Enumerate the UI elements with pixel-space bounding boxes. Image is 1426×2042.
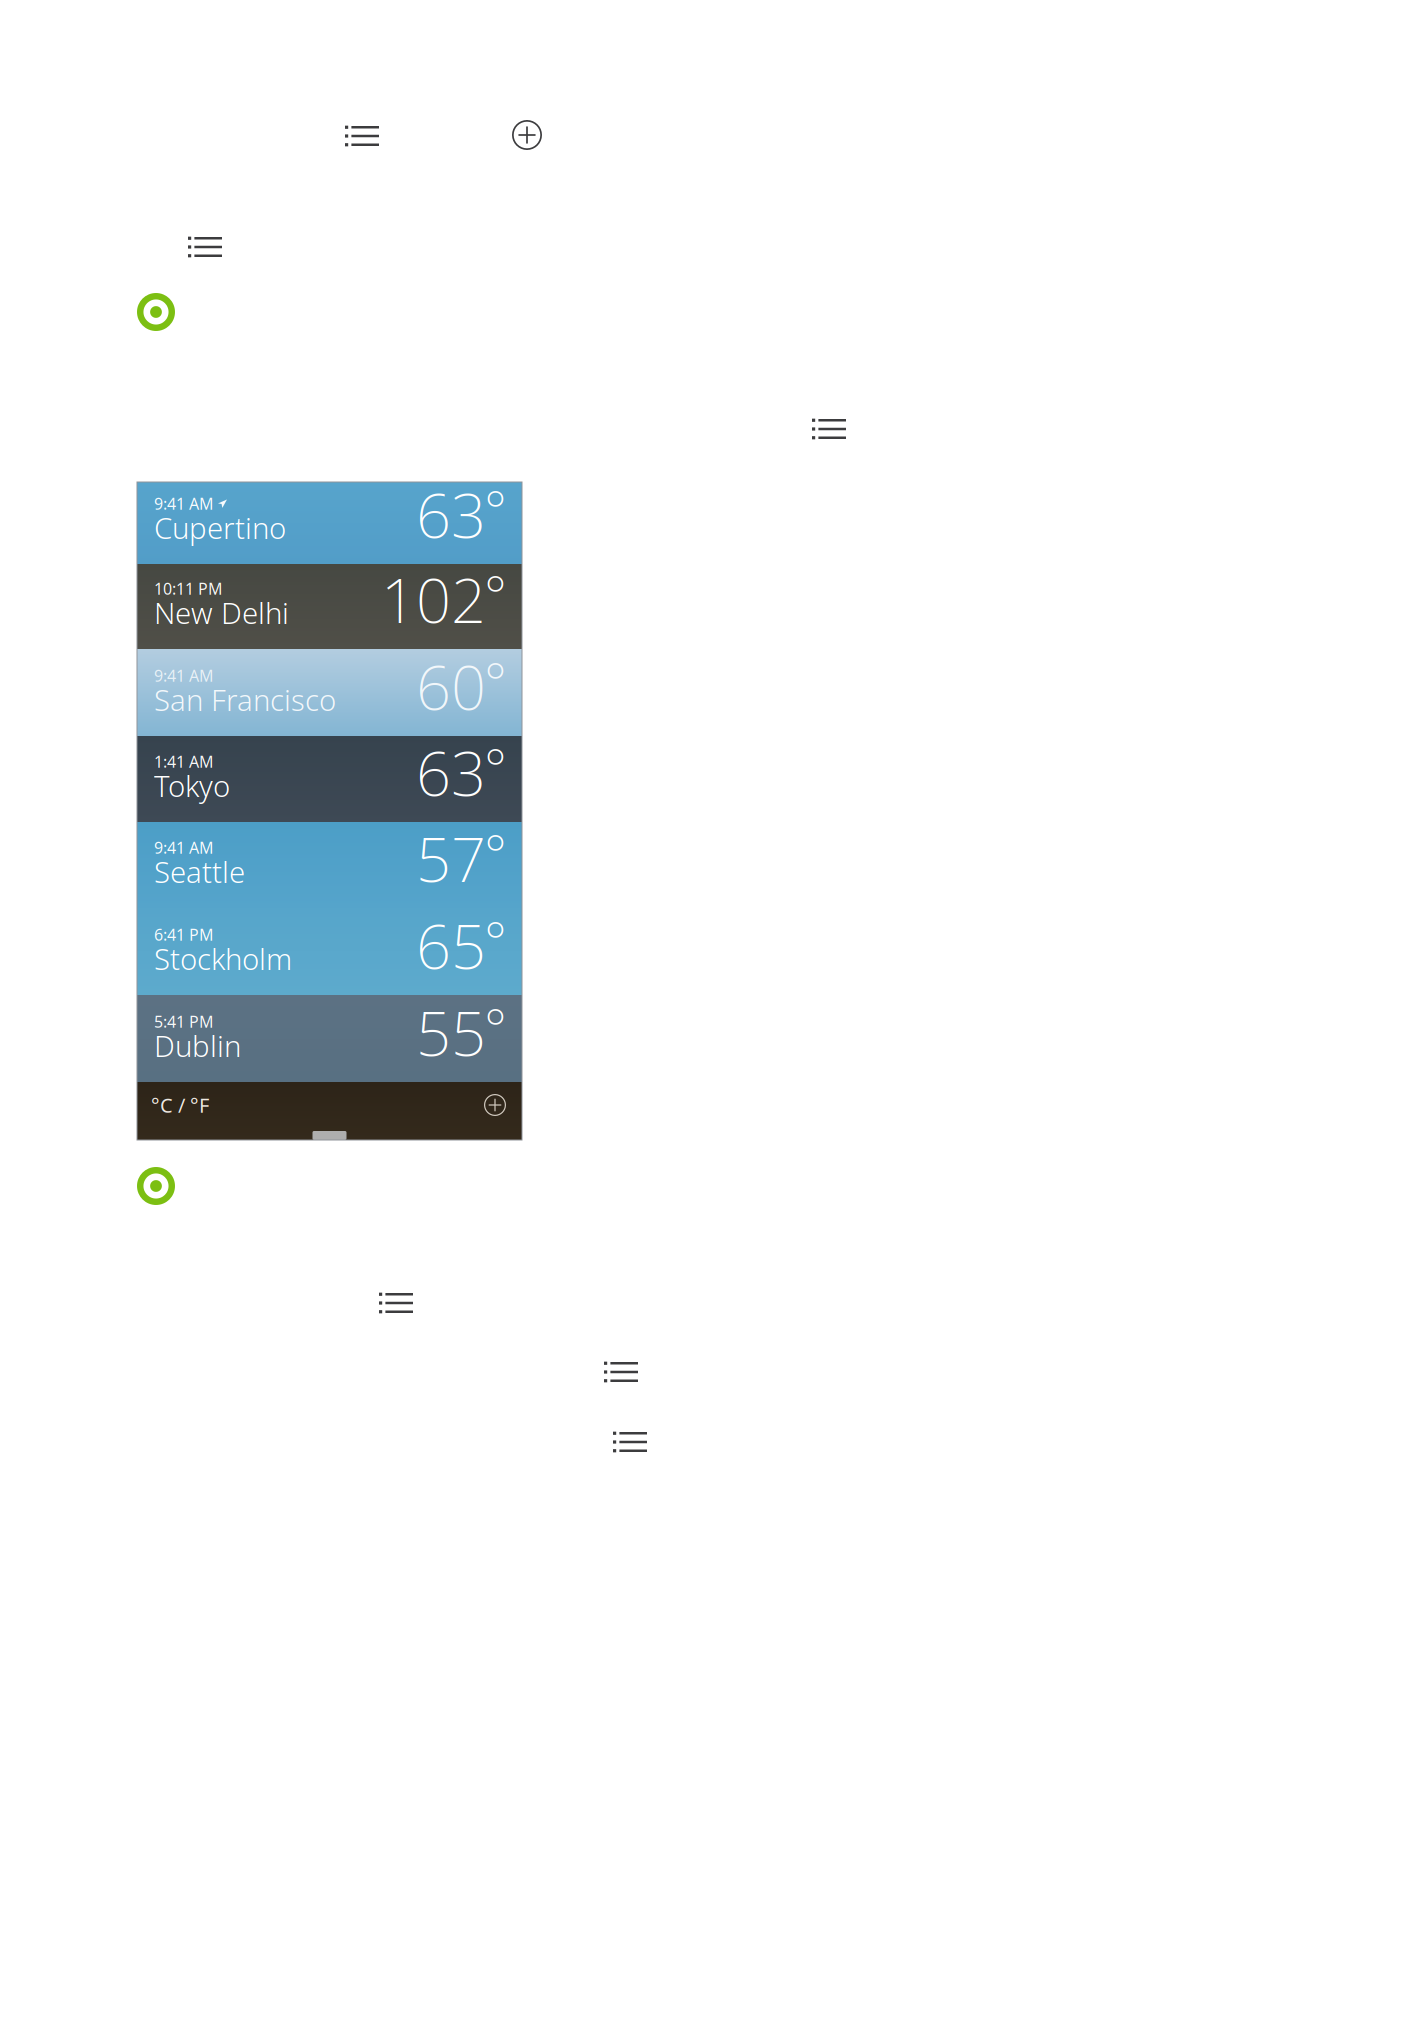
staticText: °C / °F (151, 1092, 209, 1118)
staticText: San Francisco (154, 680, 336, 719)
staticText: 55 (416, 992, 486, 1073)
button[interactable]: 1:41 AM (137, 736, 522, 822)
staticText: ° (484, 905, 507, 975)
button[interactable]: List (812, 419, 846, 439)
button[interactable]: 9:41 AM (137, 822, 522, 908)
staticText: 10:11 PM (154, 578, 223, 599)
button[interactable]: Add (512, 120, 542, 150)
button[interactable]: °C / °F (137, 1087, 209, 1123)
staticText: Seattle (154, 852, 245, 891)
button[interactable]: 6:41 PM (137, 908, 522, 995)
button[interactable]: 10:11 PM (137, 564, 522, 649)
staticText: New Delhi (154, 593, 289, 632)
staticText: 60 (416, 646, 486, 727)
button[interactable]: List (613, 1432, 647, 1452)
staticText: ° (484, 992, 507, 1062)
button[interactable]: 9:41 AM (137, 649, 522, 736)
staticText: 9:41 AM (154, 837, 214, 858)
staticText: 5:41 PM (154, 1011, 214, 1032)
staticText: 6:41 PM (154, 924, 214, 945)
staticText: Tokyo (154, 766, 230, 805)
staticText: ° (484, 559, 507, 629)
staticText: 9:41 AM (154, 665, 214, 686)
staticText: 63 (416, 474, 486, 555)
staticText: Cupertino (154, 508, 286, 547)
button[interactable]: Add city (484, 1094, 522, 1116)
button[interactable]: List (345, 126, 379, 146)
staticText: 9:41 AM (154, 493, 214, 514)
staticText: 1:41 AM (154, 751, 214, 772)
staticText: 102 (381, 559, 486, 640)
staticText: Stockholm (154, 939, 292, 978)
button[interactable]: List (379, 1293, 413, 1313)
staticText: 63 (416, 732, 486, 813)
staticText: ° (484, 474, 507, 544)
button[interactable]: 5:41 PM (137, 995, 522, 1082)
staticText: ° (484, 818, 507, 888)
staticText: ° (484, 646, 507, 716)
staticText: 65 (416, 905, 486, 986)
button[interactable]: List (604, 1362, 638, 1382)
button[interactable]: 9:41 AM (137, 482, 522, 564)
button[interactable]: List (188, 237, 222, 257)
staticText: Dublin (154, 1026, 241, 1065)
staticText: ° (484, 732, 507, 802)
staticText: 57 (416, 818, 486, 899)
